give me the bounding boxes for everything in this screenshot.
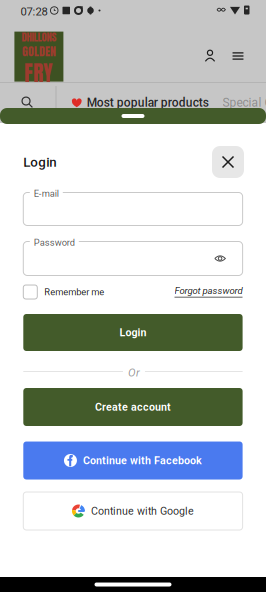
staticText: Special Of xyxy=(222,95,266,110)
staticText: GOLDEN xyxy=(22,42,56,60)
staticText: Password xyxy=(34,237,75,248)
button[interactable]: Remember me xyxy=(23,285,104,299)
staticText: Remember me xyxy=(44,286,104,297)
button[interactable]: Continue with Google xyxy=(23,492,243,530)
button[interactable]: Dhillons Golden Fry home xyxy=(14,32,63,82)
button[interactable]: Close xyxy=(212,146,244,178)
button[interactable]: Special Of xyxy=(222,95,266,110)
button[interactable]: Create account xyxy=(23,388,243,426)
button[interactable]: Search xyxy=(16,91,38,113)
button[interactable]: Forgot password xyxy=(174,285,242,298)
staticText: DHILLONS xyxy=(21,29,56,45)
staticText: Forgot password xyxy=(174,285,242,296)
staticText: Create account xyxy=(95,401,171,413)
staticText: Or xyxy=(128,366,140,379)
staticText: E-mail xyxy=(34,188,59,199)
button[interactable]: Account xyxy=(198,44,222,68)
button[interactable]: Most popular products xyxy=(72,95,209,110)
button[interactable]: Login xyxy=(23,314,243,351)
staticText: Continue with Facebook xyxy=(83,454,202,467)
staticText: 07:28 xyxy=(20,5,47,18)
button[interactable]: Continue with Facebook xyxy=(23,441,243,479)
staticText: Login xyxy=(23,154,56,170)
button[interactable]: Menu xyxy=(226,44,250,68)
staticText: Continue with Google xyxy=(91,505,194,517)
staticText: FRY xyxy=(24,57,53,89)
staticText: Most popular products xyxy=(87,95,209,110)
staticText: Login xyxy=(119,326,146,339)
